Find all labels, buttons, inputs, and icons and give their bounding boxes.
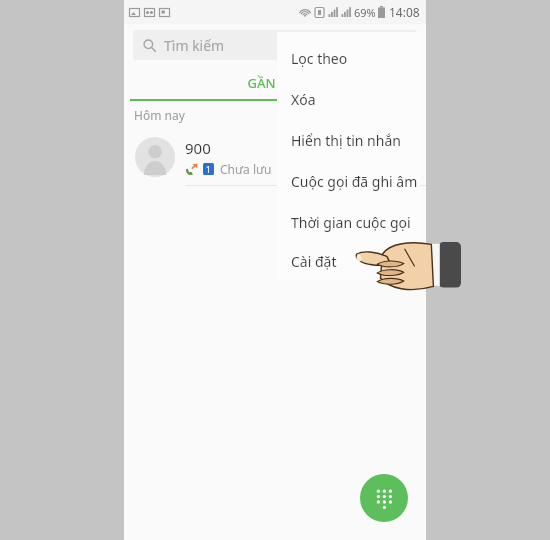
staticText: Cuộc gọi đã ghi âm <box>291 172 418 191</box>
staticText: Hôm nay <box>134 107 185 123</box>
button[interactable]: Cài đặt <box>277 243 420 280</box>
staticText: GẦN ĐÂY <box>247 74 304 92</box>
button[interactable]: Hiển thị tin nhắn <box>277 120 420 161</box>
staticText: Lọc theo <box>291 49 348 68</box>
staticText: Hiển thị tin nhắn <box>291 131 401 150</box>
button[interactable]: 900 <box>124 129 426 185</box>
button[interactable]: Cuộc gọi đã ghi âm <box>277 161 420 202</box>
button[interactable]: Tìm kiếm <box>133 30 417 60</box>
staticText: 900 <box>185 138 211 158</box>
button[interactable]: Xóa <box>277 79 420 120</box>
staticText: 69% <box>354 5 376 20</box>
staticText: 14:08 <box>389 4 420 20</box>
staticText: Chưa lưu <box>220 161 272 177</box>
staticText: Xóa <box>291 90 316 109</box>
staticText: 1 <box>206 164 211 175</box>
button[interactable]: Dialpad <box>360 474 408 522</box>
staticText: Thời gian cuộc gọi <box>291 213 411 232</box>
staticText: Tìm kiếm <box>164 36 225 55</box>
button[interactable]: GẦN ĐÂY <box>124 66 426 99</box>
button[interactable]: Thời gian cuộc gọi <box>277 202 420 243</box>
staticText: Cài đặt <box>291 252 337 271</box>
button[interactable]: Lọc theo <box>277 38 420 79</box>
